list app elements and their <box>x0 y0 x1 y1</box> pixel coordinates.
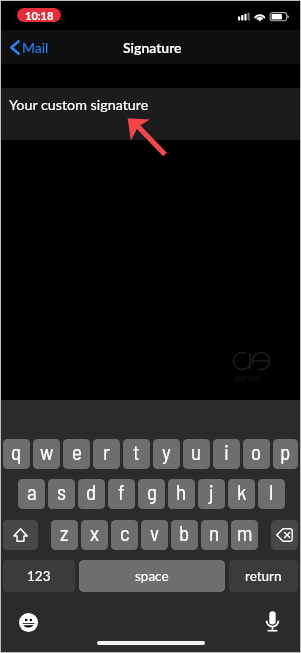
staticText: f <box>118 479 125 504</box>
button[interactable]: e <box>63 439 90 469</box>
staticText: i <box>224 439 229 464</box>
staticText: space <box>135 568 169 584</box>
staticText: Mail <box>22 39 49 56</box>
staticText: u <box>191 439 202 464</box>
staticText: n <box>209 520 220 545</box>
button[interactable]: c <box>111 520 138 550</box>
button[interactable]: p <box>273 439 298 469</box>
staticText: e <box>72 439 82 464</box>
staticText: h <box>176 479 187 504</box>
staticText: return <box>245 568 282 584</box>
staticText: j <box>209 479 214 504</box>
button[interactable]: t <box>123 439 150 469</box>
button[interactable]: Shift <box>3 520 38 550</box>
button[interactable]: j <box>198 479 225 509</box>
button[interactable]: q <box>3 439 30 469</box>
button[interactable]: u <box>183 439 210 469</box>
staticText: b <box>179 520 190 545</box>
button[interactable]: g <box>138 479 165 509</box>
button[interactable]: w <box>33 439 60 469</box>
staticText: s <box>57 479 66 504</box>
staticText: q <box>11 439 22 464</box>
button[interactable]: z <box>51 520 78 550</box>
button[interactable]: d <box>78 479 105 509</box>
button[interactable]: r <box>93 439 120 469</box>
button[interactable]: y <box>153 439 180 469</box>
button[interactable]: o <box>243 439 270 469</box>
button[interactable]: space <box>79 560 225 592</box>
staticText: t <box>133 439 140 464</box>
button[interactable]: b <box>171 520 198 550</box>
staticText: x <box>90 520 99 545</box>
button[interactable]: l <box>258 479 285 509</box>
staticText: l <box>269 479 274 504</box>
button[interactable]: m <box>231 520 258 550</box>
button[interactable]: s <box>48 479 75 509</box>
staticText: r <box>103 439 110 464</box>
button[interactable]: i <box>213 439 240 469</box>
button[interactable]: Backspace <box>271 520 298 550</box>
staticText: a <box>27 479 37 504</box>
button[interactable]: Dictation <box>265 611 280 632</box>
button[interactable]: f <box>108 479 135 509</box>
button[interactable]: a <box>18 479 45 509</box>
staticText: g <box>147 479 157 504</box>
button[interactable]: x <box>81 520 108 550</box>
button[interactable]: v <box>141 520 168 550</box>
staticText: y <box>162 439 171 464</box>
staticText: Signature <box>123 39 182 56</box>
staticText: d <box>86 479 97 504</box>
staticText: server <box>234 371 262 383</box>
staticText: c <box>120 520 130 545</box>
staticText: w <box>40 439 54 464</box>
button[interactable]: n <box>201 520 228 550</box>
staticText: v <box>150 520 159 545</box>
button[interactable]: Emoji keyboard <box>19 613 38 632</box>
staticText: 10:18 <box>25 9 54 22</box>
staticText: 123 <box>27 568 51 584</box>
button[interactable]: 123 <box>3 560 75 592</box>
staticText: Your custom signature <box>9 96 149 113</box>
button[interactable]: return <box>229 560 298 592</box>
button[interactable]: k <box>228 479 255 509</box>
button[interactable]: Your custom signature <box>0 88 301 140</box>
staticText: o <box>251 439 262 464</box>
staticText: p <box>280 439 291 464</box>
staticText: k <box>237 479 247 504</box>
staticText: m <box>237 520 253 545</box>
button[interactable]: h <box>168 479 195 509</box>
button[interactable]: Mail <box>10 39 49 56</box>
staticText: z <box>60 520 69 545</box>
